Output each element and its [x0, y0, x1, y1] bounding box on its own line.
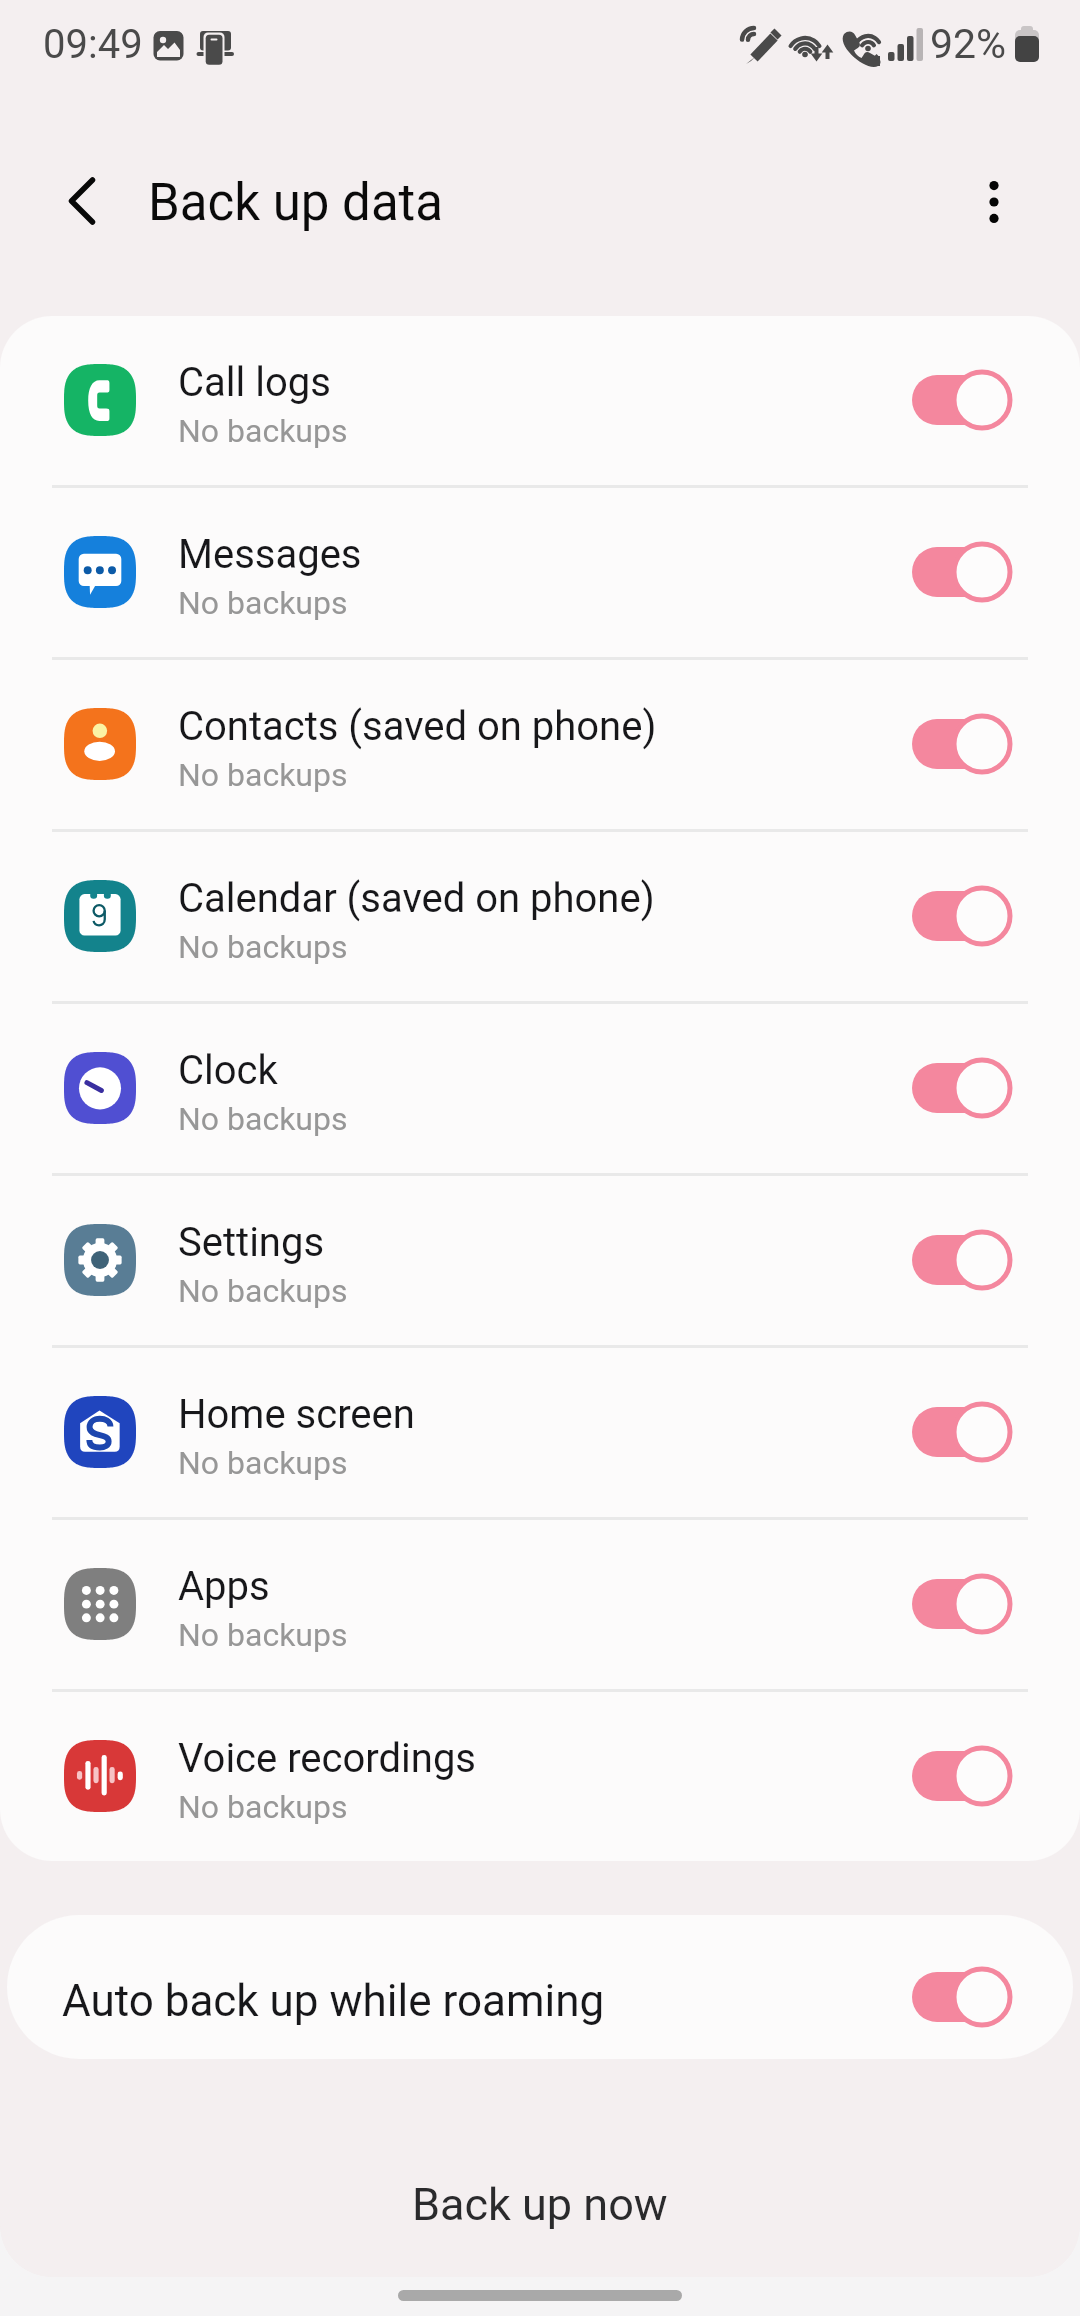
staticText: 92%	[930, 20, 1007, 68]
staticText: Messages	[178, 531, 362, 578]
staticText: No backups	[178, 412, 348, 450]
staticText: No backups	[178, 1100, 348, 1138]
staticText: No backups	[178, 928, 348, 966]
button[interactable]: Apps	[0, 1520, 1080, 1689]
button[interactable]: Home screen	[0, 1348, 1080, 1517]
staticText: 09:49	[43, 21, 143, 68]
staticText: Voice recordings	[178, 1735, 476, 1782]
staticText: No backups	[178, 1788, 348, 1826]
staticText: No backups	[178, 1272, 348, 1310]
staticText: No backups	[178, 1616, 348, 1654]
staticText: Back up data	[148, 173, 444, 233]
staticText: Settings	[178, 1219, 325, 1266]
staticText: No backups	[178, 584, 348, 622]
button[interactable]: Clock	[0, 1004, 1080, 1173]
staticText: No backups	[178, 1444, 348, 1482]
staticText: Apps	[178, 1563, 270, 1610]
staticText: Auto back up while roaming	[62, 1975, 605, 2027]
button[interactable]: Back up now	[0, 2133, 1080, 2276]
button[interactable]: Contacts (saved on phone)	[0, 660, 1080, 829]
button[interactable]: More options	[948, 156, 1040, 248]
staticText: Calendar (saved on phone)	[178, 875, 655, 922]
button[interactable]: Back	[36, 155, 128, 247]
button[interactable]: Auto back up while roaming	[7, 1915, 1073, 2059]
button[interactable]: Call logs	[0, 316, 1080, 485]
button[interactable]: Voice recordings	[0, 1692, 1080, 1861]
staticText: No backups	[178, 756, 348, 794]
button[interactable]: Settings	[0, 1176, 1080, 1345]
staticText: Home screen	[178, 1391, 415, 1438]
staticText: Back up now	[412, 2178, 668, 2231]
button[interactable]: Messages	[0, 488, 1080, 657]
staticText: Call logs	[178, 359, 331, 406]
button[interactable]: Calendar (saved on phone)	[0, 832, 1080, 1001]
staticText: Contacts (saved on phone)	[178, 703, 657, 750]
staticText: Clock	[178, 1047, 278, 1094]
